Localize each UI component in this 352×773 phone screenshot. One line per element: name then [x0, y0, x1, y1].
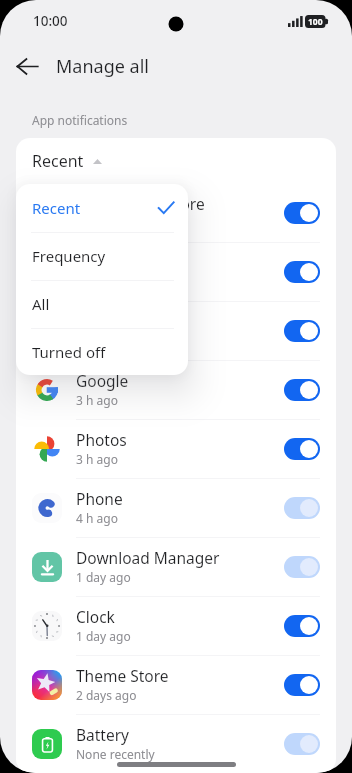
button[interactable]: Back [9, 48, 45, 84]
button[interactable]: Recent [16, 138, 336, 183]
staticText: Frequency [32, 246, 174, 266]
staticText: 3 h ago [76, 451, 118, 467]
staticText: Clock [76, 606, 115, 627]
button[interactable]: Notifications off [284, 733, 320, 755]
button[interactable]: Notifications off [284, 556, 320, 578]
button[interactable]: Notifications on [284, 261, 320, 283]
staticText: 3 h ago [76, 392, 118, 408]
staticText: Messages [76, 252, 149, 273]
button[interactable]: Theme Store [16, 655, 336, 714]
staticText: Download Manager [76, 547, 220, 568]
staticText: Phone [76, 488, 123, 509]
staticText: All [32, 294, 174, 314]
button[interactable]: Notifications on [284, 202, 320, 224]
button[interactable]: Notifications on [284, 674, 320, 696]
button[interactable]: Notifications on [284, 320, 320, 342]
button[interactable]: Frequency [16, 232, 188, 280]
button[interactable]: Battery [16, 714, 336, 773]
staticText: None recently [76, 746, 155, 762]
staticText: Theme Store [76, 665, 169, 686]
staticText: Turned off [32, 342, 174, 362]
staticText: Recent [32, 150, 84, 172]
button[interactable]: Google Play Store [16, 183, 336, 242]
button[interactable]: Phone [16, 478, 336, 537]
button[interactable]: Recent [16, 184, 188, 232]
button[interactable]: Weather [16, 301, 336, 360]
staticText: App notifications [32, 112, 128, 128]
staticText: 2 h ago [76, 333, 118, 349]
staticText: Google [76, 370, 129, 391]
button[interactable]: Notifications on [284, 438, 320, 460]
staticText: 2 days ago [76, 687, 137, 703]
button[interactable]: Notifications on [284, 615, 320, 637]
staticText: 10:00 [33, 12, 68, 30]
button[interactable]: Turned off [16, 328, 188, 375]
staticText: Recent [32, 198, 158, 218]
button[interactable]: Notifications on [284, 379, 320, 401]
staticText: 100 [308, 16, 323, 28]
button[interactable]: Messages [16, 242, 336, 301]
staticText: 1 day ago [76, 628, 131, 644]
button[interactable]: Google [16, 360, 336, 419]
button[interactable]: Download Manager [16, 537, 336, 596]
button[interactable]: Photos [16, 419, 336, 478]
staticText: Manage all [56, 54, 149, 79]
staticText: Battery [76, 724, 130, 745]
button[interactable]: Clock [16, 596, 336, 655]
staticText: 1 day ago [76, 569, 131, 585]
staticText: Google Play Store [76, 193, 205, 214]
button[interactable]: Notifications off [284, 497, 320, 519]
button[interactable]: All [16, 280, 188, 328]
staticText: Photos [76, 429, 127, 450]
staticText: 4 h ago [76, 510, 118, 526]
